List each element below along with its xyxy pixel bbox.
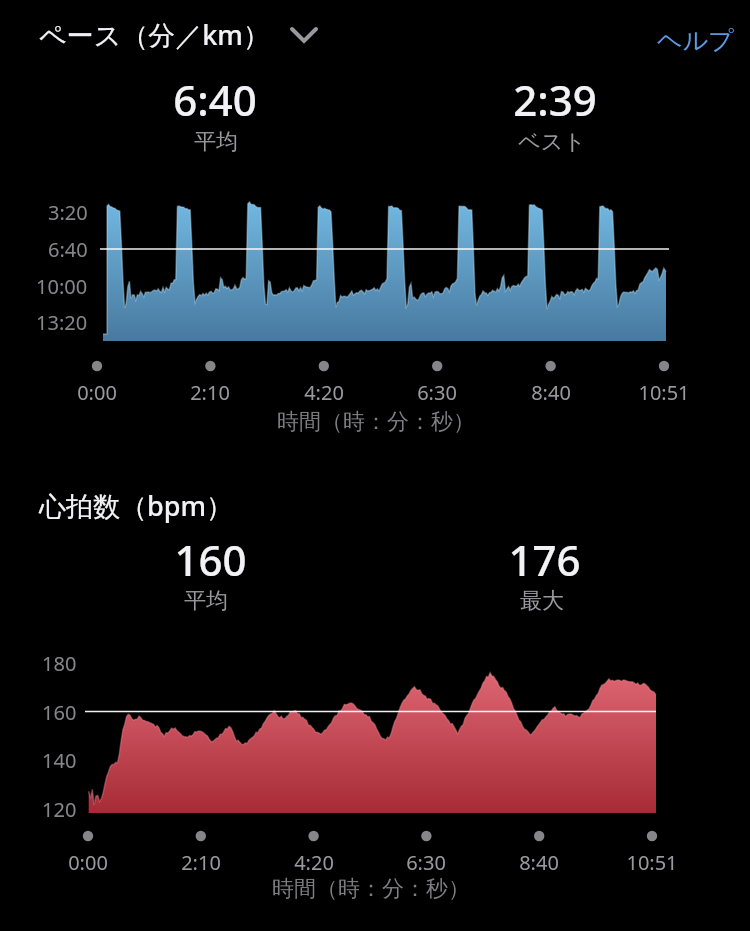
staticText: 8:40 (531, 379, 571, 406)
staticText: 4:20 (294, 849, 334, 876)
staticText: 176 (508, 531, 581, 588)
staticText: ヘルプ (657, 25, 734, 56)
staticText: 180 (42, 650, 77, 677)
staticText: 心拍数（bpm） (39, 487, 234, 524)
staticText: 0:00 (77, 379, 117, 406)
staticText: 3:20 (48, 199, 88, 226)
staticText: 160 (42, 699, 77, 726)
staticText: 160 (174, 531, 247, 588)
staticText: 2:10 (190, 379, 230, 406)
staticText: 10:51 (626, 849, 678, 876)
staticText: 140 (42, 747, 77, 774)
staticText: 時間（時：分：秒） (272, 875, 470, 903)
staticText: 6:30 (417, 379, 457, 406)
button[interactable]: ペース（分／km） (39, 4, 369, 64)
staticText: 10:51 (638, 379, 690, 406)
button[interactable]: ヘルプ (535, 10, 750, 70)
staticText: 6:40 (48, 236, 88, 263)
staticText: 2:39 (513, 71, 597, 128)
staticText: ペース（分／km） (39, 16, 270, 53)
staticText: 最大 (520, 587, 564, 615)
staticText: 時間（時：分：秒） (277, 408, 475, 436)
staticText: 6:30 (406, 849, 446, 876)
staticText: 0:00 (68, 849, 108, 876)
staticText: 平均 (184, 587, 228, 615)
staticText: 6:40 (173, 71, 257, 128)
staticText: 13:20 (36, 309, 88, 336)
staticText: 10:00 (36, 273, 88, 300)
staticText: 2:10 (181, 849, 221, 876)
staticText: 8:40 (519, 849, 559, 876)
staticText: 4:20 (304, 379, 344, 406)
staticText: 120 (42, 796, 77, 823)
staticText: ベスト (518, 128, 586, 156)
staticText: 平均 (194, 128, 238, 156)
